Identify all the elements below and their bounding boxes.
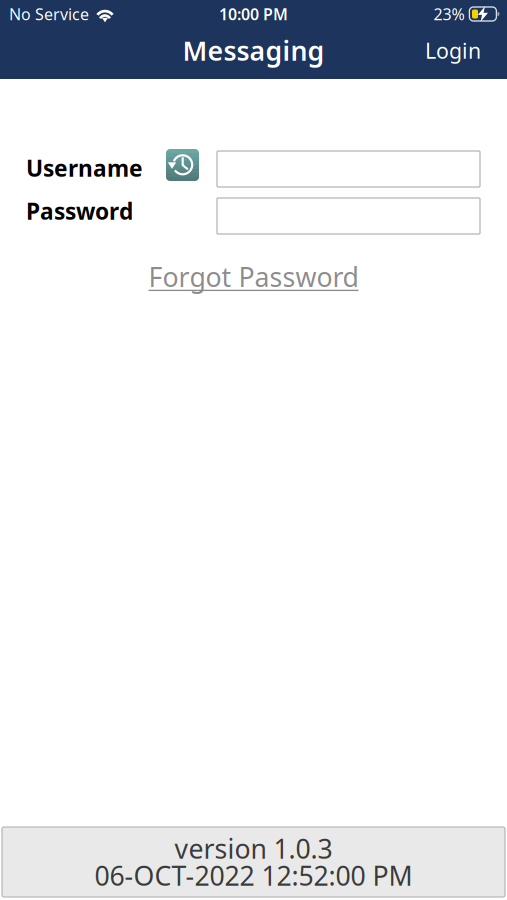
- staticText: No Service: [9, 3, 89, 25]
- button[interactable]: Forgot Password: [138, 255, 368, 298]
- staticText: Username: [26, 153, 143, 183]
- staticText: 06-OCT-2022 12:52:00 PM: [94, 858, 412, 893]
- staticText: Password: [26, 196, 133, 226]
- button[interactable]: Recent history: [166, 149, 199, 181]
- staticText: Login: [425, 36, 481, 65]
- staticText: version 1.0.3: [174, 831, 332, 866]
- button[interactable]: Login: [411, 27, 507, 74]
- staticText: 23%: [433, 3, 464, 25]
- staticText: Forgot Password: [148, 259, 358, 294]
- staticText: 10:00 PM: [219, 3, 288, 25]
- staticText: Messaging: [182, 33, 324, 68]
